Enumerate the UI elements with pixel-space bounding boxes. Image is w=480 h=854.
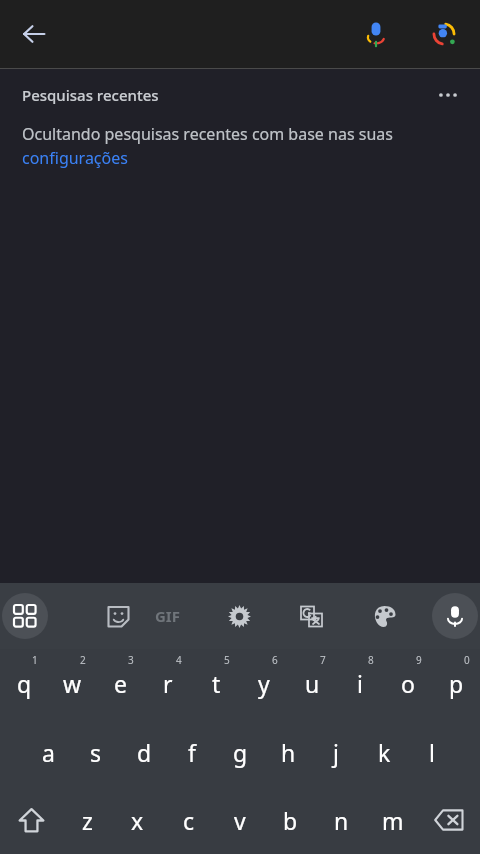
button[interactable]: g — [216, 718, 264, 786]
button[interactable]: o — [384, 649, 432, 718]
button[interactable]: f — [168, 718, 216, 786]
staticText: i — [357, 668, 363, 699]
staticText: u — [305, 668, 320, 699]
staticText: c — [183, 805, 195, 836]
button[interactable]: b — [265, 786, 316, 854]
button[interactable]: j — [312, 718, 360, 786]
staticText: 9 — [416, 653, 422, 667]
staticText: r — [163, 668, 173, 699]
button[interactable]: z — [62, 786, 112, 854]
button[interactable]: Themes — [360, 592, 408, 640]
staticText: o — [401, 668, 415, 699]
staticText: 4 — [176, 653, 182, 667]
button[interactable]: d — [120, 718, 168, 786]
staticText: e — [114, 668, 127, 699]
staticText: b — [283, 805, 298, 836]
staticText: 0 — [464, 653, 470, 667]
button[interactable]: m — [367, 786, 418, 854]
staticText: Pesquisas recentes — [22, 85, 159, 105]
staticText: 6 — [272, 653, 278, 667]
staticText: x — [131, 805, 144, 836]
button[interactable]: s — [72, 718, 120, 786]
button[interactable]: Settings — [215, 592, 263, 640]
button[interactable]: Back — [8, 8, 60, 60]
button[interactable]: Stickers — [94, 592, 142, 640]
button[interactable]: Shift — [0, 786, 62, 854]
staticText: t — [212, 668, 221, 699]
button[interactable]: GIF — [143, 592, 191, 640]
staticText: p — [449, 668, 464, 699]
button[interactable]: i — [336, 649, 384, 718]
staticText: Ocultando pesquisas recentes com base na… — [22, 123, 464, 169]
button[interactable]: Backspace — [418, 786, 480, 854]
button[interactable]: k — [360, 718, 408, 786]
button[interactable]: u — [288, 649, 336, 718]
staticText: k — [378, 737, 391, 768]
button[interactable]: Translate — [287, 592, 335, 640]
staticText: g — [233, 737, 248, 768]
button[interactable]: w — [48, 649, 96, 718]
staticText: f — [188, 737, 196, 768]
button[interactable]: r — [144, 649, 192, 718]
staticText: w — [63, 668, 82, 699]
staticText: 1 — [32, 653, 38, 667]
staticText: z — [82, 805, 93, 836]
button[interactable]: t — [192, 649, 240, 718]
staticText: GIF — [155, 606, 180, 626]
button[interactable]: y — [240, 649, 288, 718]
staticText: 3 — [128, 653, 134, 667]
staticText: a — [42, 737, 55, 768]
button[interactable]: Voice input — [432, 593, 478, 639]
button[interactable]: e — [96, 649, 144, 718]
staticText: d — [137, 737, 152, 768]
button[interactable]: v — [214, 786, 265, 854]
staticText: q — [17, 668, 32, 699]
staticText: 7 — [320, 653, 326, 667]
button[interactable]: x — [112, 786, 163, 854]
button[interactable]: Keyboard apps — [2, 593, 48, 639]
button[interactable]: More options — [426, 73, 470, 117]
staticText: 8 — [368, 653, 374, 667]
button[interactable]: p — [432, 649, 480, 718]
staticText: s — [90, 737, 102, 768]
staticText: h — [281, 737, 296, 768]
staticText: 2 — [80, 653, 86, 667]
staticText: l — [429, 737, 435, 768]
button[interactable]: l — [408, 718, 456, 786]
button[interactable]: h — [264, 718, 312, 786]
button[interactable]: q — [0, 649, 48, 718]
button[interactable]: a — [24, 718, 72, 786]
staticText: m — [382, 805, 404, 836]
button[interactable]: Voice search — [352, 10, 400, 58]
staticText: y — [258, 668, 270, 699]
button[interactable]: c — [163, 786, 214, 854]
staticText: j — [333, 737, 339, 768]
staticText: v — [234, 805, 246, 836]
staticText: 5 — [224, 653, 230, 667]
button[interactable]: n — [316, 786, 367, 854]
staticText: n — [334, 805, 349, 836]
button[interactable]: Google Lens — [420, 10, 468, 58]
